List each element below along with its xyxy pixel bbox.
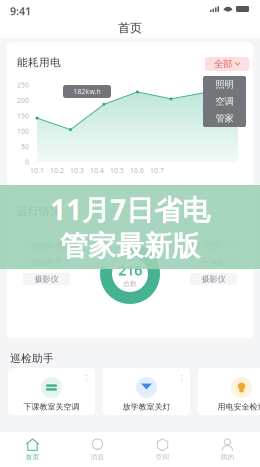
staticText: 250 [17, 81, 29, 89]
staticText: 50 [21, 142, 29, 151]
staticText: 管家最新版 [60, 229, 200, 263]
button[interactable]: 管家 [203, 110, 246, 127]
button[interactable]: 消息 [65, 432, 130, 467]
staticText: 管家 [215, 113, 233, 124]
button[interactable]: 照明 [203, 76, 246, 93]
staticText: 下课教室关空调 [23, 402, 79, 412]
staticText: 首页 [118, 21, 142, 35]
staticText: 用电安全检查 [217, 402, 260, 412]
button[interactable]: 空调 [203, 93, 246, 110]
staticText: 10.3 [70, 166, 84, 175]
staticText: 216 [118, 260, 142, 280]
staticText: 0 [25, 158, 29, 166]
staticText: 10.7 [150, 166, 164, 175]
staticText: 消息 [90, 453, 104, 461]
staticText: 空调 [215, 96, 233, 107]
staticText: 10.1 [30, 166, 44, 175]
staticText: 11月7日省电 [50, 191, 210, 228]
staticText: 10.2 [50, 166, 64, 175]
button[interactable]: 我的 [195, 432, 260, 467]
staticText: 放学教室关灯 [122, 402, 170, 412]
staticText: 182kw.h [73, 87, 100, 96]
staticText: 200 [17, 96, 29, 105]
staticText: 150 [17, 111, 29, 120]
staticText: 10.5 [110, 166, 124, 175]
staticText: 空间 [155, 453, 169, 461]
staticText: 智能插座 [30, 240, 62, 250]
staticText: 能耗用电 [17, 56, 61, 69]
staticText: 10.4 [90, 166, 104, 175]
staticText: 照明 [215, 79, 233, 90]
staticText: 运行情况 [17, 205, 61, 218]
button[interactable]: 放学教室关灯 [103, 368, 190, 415]
staticText: 全部 [214, 58, 232, 70]
button[interactable]: 全部 [205, 57, 249, 71]
staticText: 摄影仪 [201, 274, 225, 284]
staticText: 10.6 [130, 166, 144, 175]
button[interactable]: 首页 [0, 432, 65, 467]
button[interactable]: 下课教室关空调 [8, 368, 95, 415]
staticText: 9:41 [10, 4, 31, 18]
button[interactable]: 用电安全检查 [198, 368, 260, 415]
staticText: 我的 [220, 453, 234, 461]
staticText: 巡检助手 [10, 352, 54, 365]
staticText: 100 [17, 127, 29, 136]
staticText: 摄影仪 [34, 274, 58, 284]
staticText: 首页 [25, 453, 39, 461]
staticText: 总数 [123, 280, 137, 288]
button[interactable]: 空间 [130, 432, 195, 467]
